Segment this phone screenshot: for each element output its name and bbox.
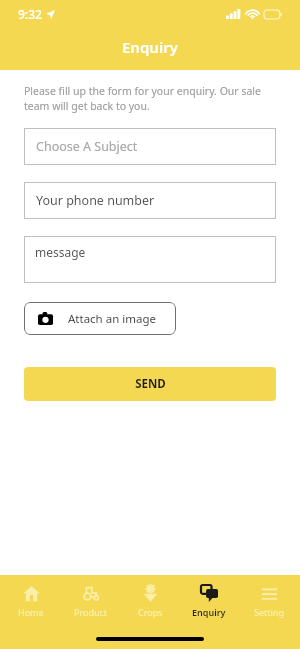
- button[interactable]: SEND: [24, 367, 276, 401]
- staticText: 9:32: [18, 6, 42, 22]
- staticText: Setting: [254, 606, 284, 618]
- button[interactable]: Setting: [241, 575, 297, 627]
- staticText: Enquiry: [122, 37, 178, 57]
- staticText: Crops: [138, 606, 163, 618]
- staticText: Choose A Subject: [36, 138, 138, 155]
- staticText: Product: [74, 606, 108, 618]
- button[interactable]: Crops: [122, 575, 178, 627]
- staticText: Attach an image: [68, 311, 156, 327]
- button[interactable]: message: [24, 236, 276, 283]
- staticText: Please fill up the form for your enquiry…: [24, 84, 276, 113]
- staticText: SEND: [135, 376, 166, 392]
- button[interactable]: Enquiry: [181, 575, 237, 627]
- button[interactable]: Home: [3, 575, 59, 627]
- staticText: message: [35, 244, 86, 260]
- button[interactable]: Attach an image: [24, 302, 176, 335]
- staticText: Your phone number: [36, 192, 155, 209]
- button[interactable]: Choose A Subject: [24, 128, 276, 165]
- button[interactable]: Your phone number: [24, 182, 276, 219]
- staticText: Home: [18, 606, 44, 618]
- button[interactable]: Product: [63, 575, 119, 627]
- staticText: Enquiry: [192, 606, 226, 618]
